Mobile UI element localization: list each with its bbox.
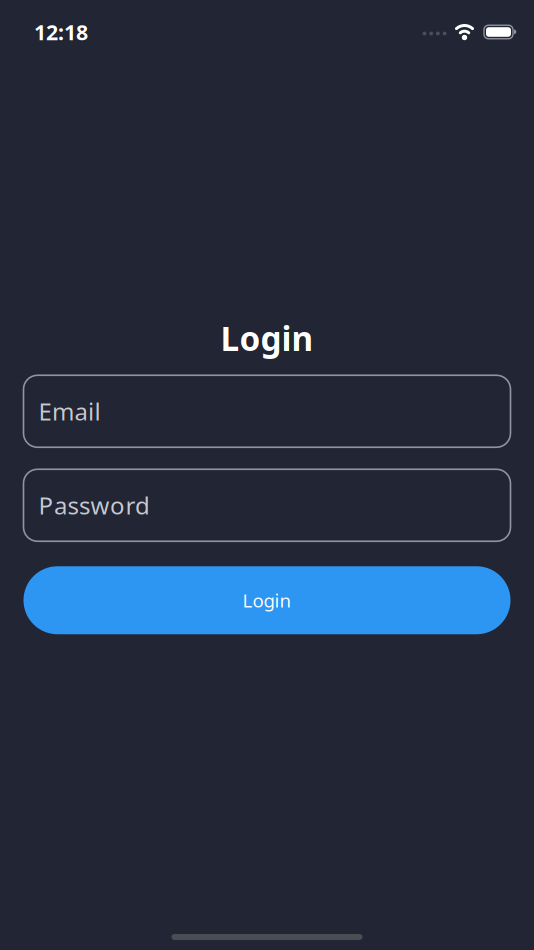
staticText: Login (220, 316, 313, 360)
staticText: Login (242, 588, 291, 613)
button[interactable]: Email (23, 375, 510, 447)
staticText: Password (38, 489, 150, 521)
button[interactable]: Password (23, 469, 510, 541)
button[interactable]: Login (23, 566, 510, 634)
staticText: Email (38, 395, 100, 427)
staticText: 12:18 (34, 18, 88, 46)
